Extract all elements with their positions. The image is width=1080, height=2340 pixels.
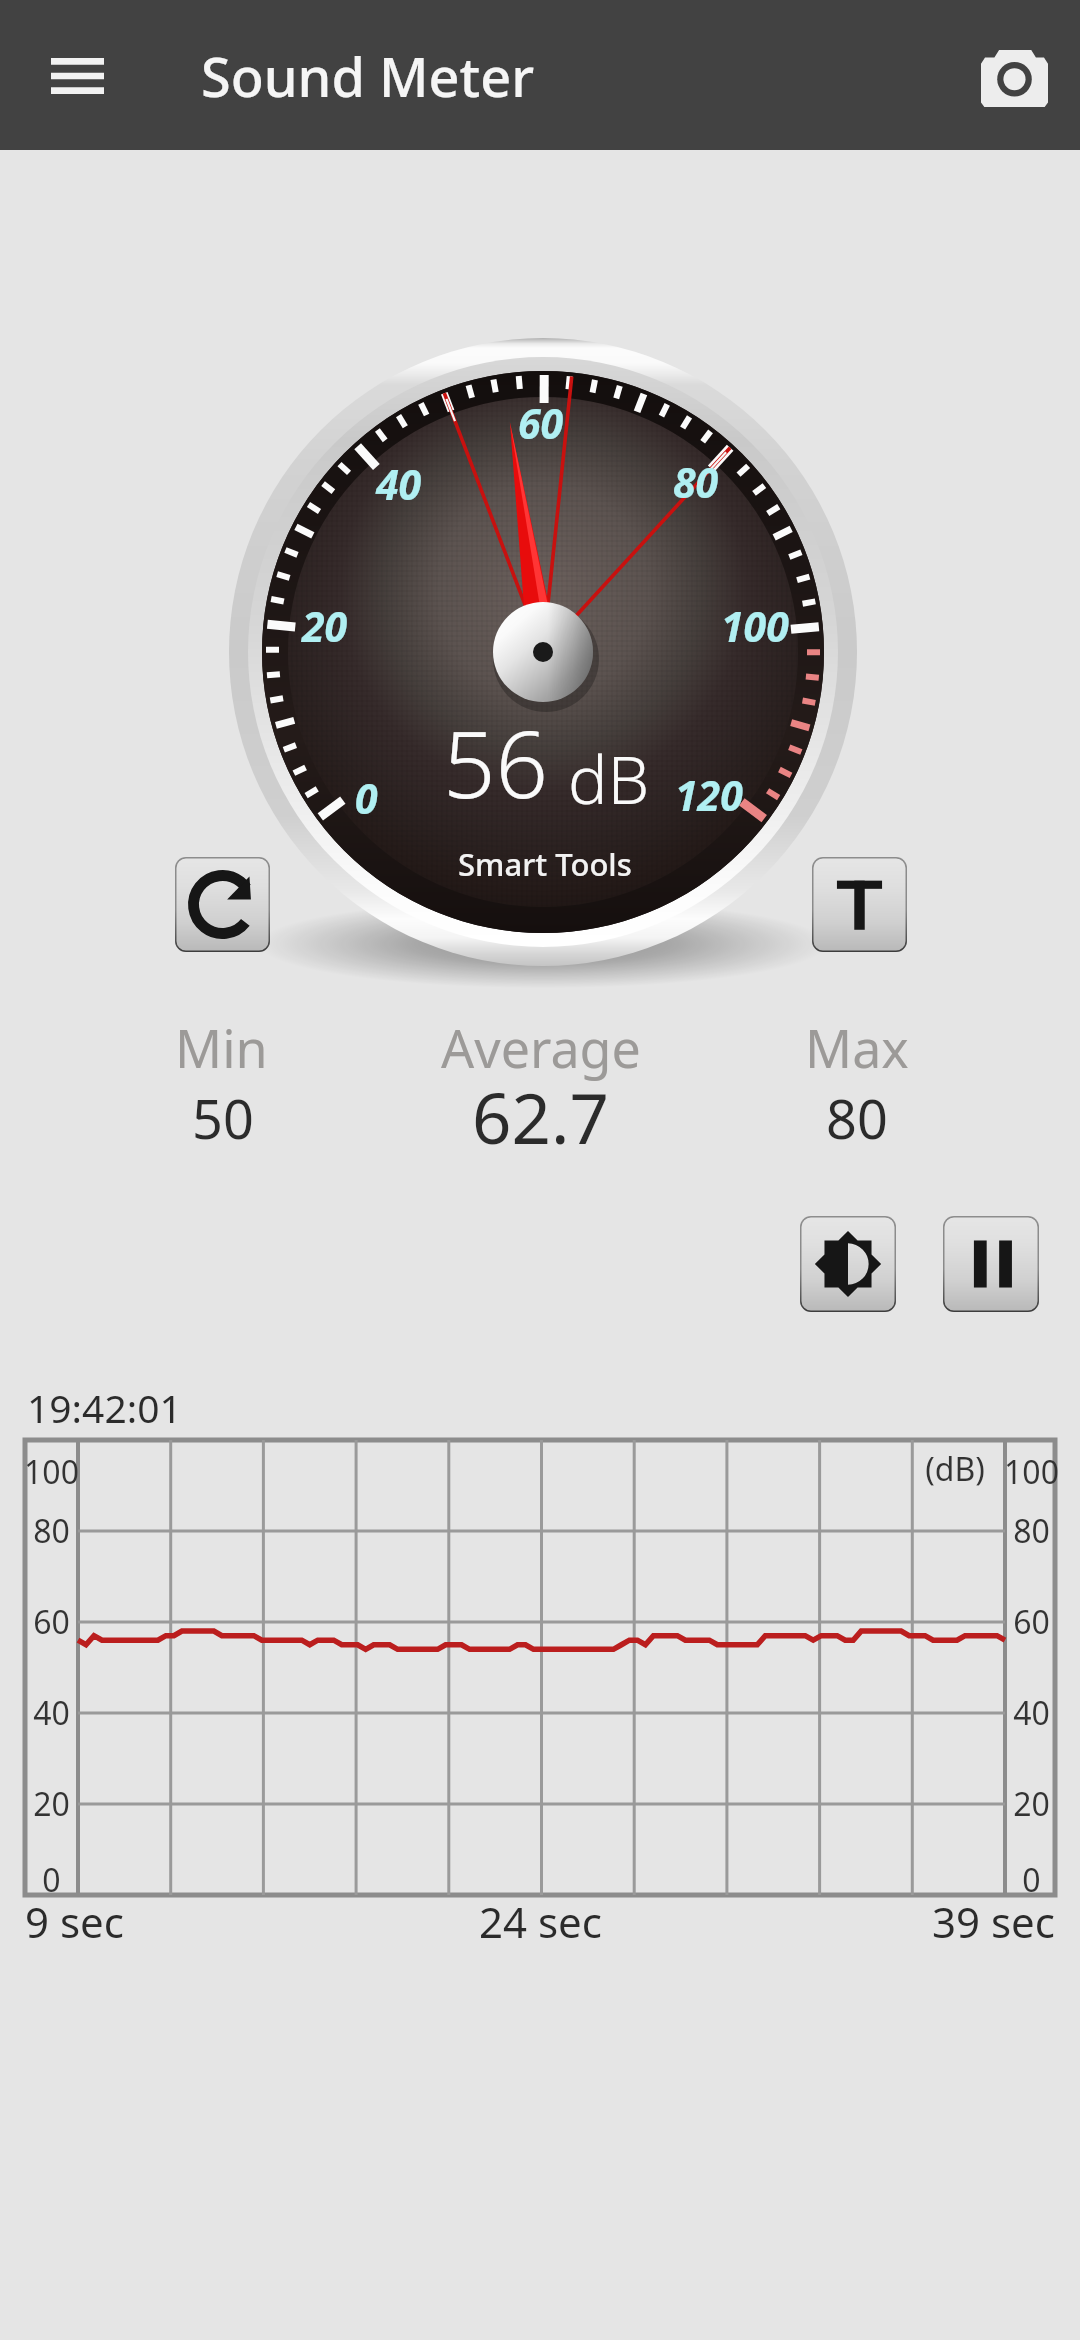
staticText: 80 xyxy=(1013,1509,1050,1553)
staticText: 60 xyxy=(518,395,564,451)
staticText: 60 xyxy=(1013,1600,1050,1644)
staticText: 62.7 xyxy=(472,1070,609,1164)
staticText: 40 xyxy=(1013,1691,1050,1735)
button[interactable]: Open navigation menu xyxy=(29,28,125,124)
staticText: 0 xyxy=(355,770,378,826)
staticText: 40 xyxy=(376,456,422,512)
staticText: 9 sec xyxy=(25,1893,124,1950)
staticText: Max xyxy=(805,1012,909,1083)
staticText: 120 xyxy=(675,767,743,823)
staticText: 80 xyxy=(33,1509,70,1553)
staticText: 100 xyxy=(721,598,789,654)
staticText: 39 sec xyxy=(932,1893,1055,1950)
staticText: 100 xyxy=(24,1450,78,1494)
staticText: 100 xyxy=(1004,1450,1058,1494)
staticText: (dB) xyxy=(925,1447,985,1491)
staticText: 20 xyxy=(33,1782,70,1826)
staticText: 19:42:01 xyxy=(27,1381,182,1434)
staticText: 20 xyxy=(302,598,348,654)
staticText: Sound Meter xyxy=(201,39,535,113)
staticText: Min xyxy=(175,1012,268,1083)
staticText: Average xyxy=(441,1012,641,1083)
staticText: 56 xyxy=(443,700,549,825)
button[interactable]: Reset measurement xyxy=(175,857,270,952)
staticText: 80 xyxy=(826,1081,888,1155)
button[interactable]: Camera xyxy=(962,26,1066,130)
staticText: 0 xyxy=(42,1858,61,1902)
button[interactable]: Show numbers xyxy=(812,857,907,952)
staticText: 60 xyxy=(33,1600,70,1644)
staticText: 20 xyxy=(1013,1782,1050,1826)
staticText: 50 xyxy=(192,1081,254,1155)
staticText: 24 sec xyxy=(479,1893,602,1950)
staticText: 80 xyxy=(673,454,719,510)
button[interactable]: Pause xyxy=(943,1216,1039,1312)
button[interactable]: Brightness xyxy=(800,1216,896,1312)
staticText: 40 xyxy=(33,1691,70,1735)
staticText: Smart Tools xyxy=(458,843,632,885)
staticText: 0 xyxy=(1022,1858,1041,1902)
staticText: dB xyxy=(568,733,650,823)
